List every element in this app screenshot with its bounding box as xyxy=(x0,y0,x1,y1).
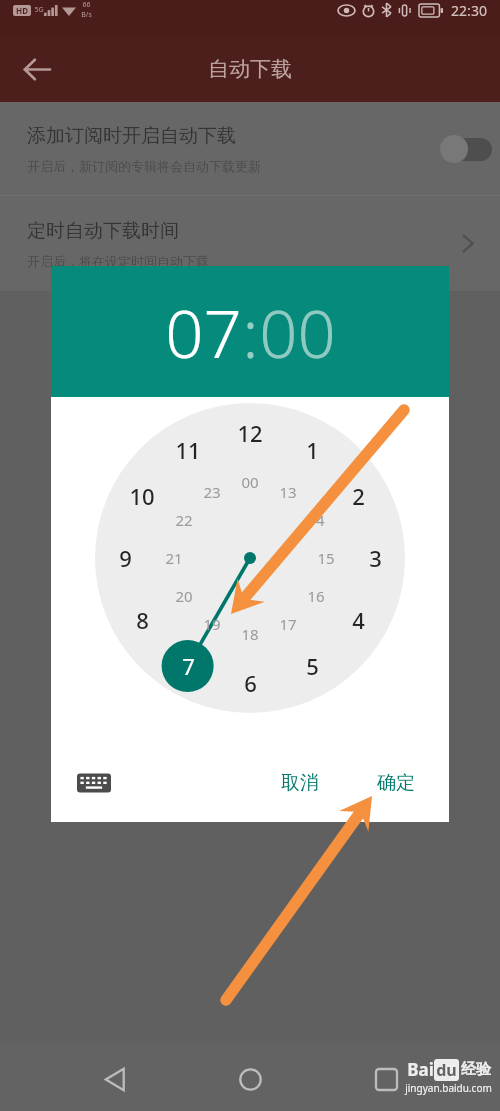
button[interactable]: 9 xyxy=(114,538,137,578)
button[interactable]: 定时自动下载时间 xyxy=(0,196,500,291)
staticText: 11 xyxy=(175,435,201,465)
staticText: 8 xyxy=(136,605,149,635)
button[interactable]: 14 xyxy=(302,505,330,535)
staticText: 5 xyxy=(306,651,319,681)
staticText: 15 xyxy=(317,548,335,568)
button[interactable]: 确定 xyxy=(363,761,429,805)
staticText: 定时自动下载时间 xyxy=(27,219,179,243)
staticText: 13 xyxy=(279,482,297,502)
button[interactable]: 10 xyxy=(124,476,160,516)
staticText: 4 xyxy=(352,605,365,635)
staticText: 20 xyxy=(175,586,193,606)
staticText: 开启后，新订阅的专辑将会自动下载更新 xyxy=(27,158,261,174)
button[interactable]: 18 xyxy=(236,619,264,649)
staticText: 10 xyxy=(129,481,155,511)
button[interactable]: Back xyxy=(12,45,60,93)
staticText: 添加订阅时开启自动下载 xyxy=(27,124,236,148)
button[interactable]: 07 xyxy=(165,286,242,377)
staticText: 14 xyxy=(307,510,325,530)
button[interactable]: 5 xyxy=(301,646,324,686)
staticText: 07 xyxy=(165,286,242,377)
staticText: 5G xyxy=(34,5,44,15)
staticText: : xyxy=(242,286,259,377)
button[interactable]: 23 xyxy=(198,477,226,507)
staticText: HD xyxy=(16,5,28,16)
button[interactable]: 12 xyxy=(232,413,268,453)
staticText: 经验 xyxy=(461,1060,491,1079)
button[interactable]: Switch to keyboard input xyxy=(71,760,117,806)
staticText: 66 xyxy=(82,0,91,10)
staticText: Bai xyxy=(407,1058,434,1081)
button[interactable]: 3 xyxy=(364,538,387,578)
button[interactable]: 21 xyxy=(160,543,188,573)
staticText: 6 xyxy=(244,668,257,698)
staticText: 00 xyxy=(259,286,336,377)
staticText: 7 xyxy=(182,651,195,681)
button[interactable]: 4 xyxy=(347,600,370,640)
button[interactable]: Home xyxy=(228,1057,272,1101)
button[interactable]: 20 xyxy=(170,581,198,611)
button[interactable]: 7 xyxy=(177,646,200,686)
staticText: 3 xyxy=(369,543,382,573)
staticText: jingyan.baidu.com xyxy=(405,1081,492,1095)
button[interactable]: 2 xyxy=(347,476,370,516)
staticText: 22:30 xyxy=(451,1,487,20)
button[interactable]: Recent apps xyxy=(364,1057,408,1101)
button[interactable]: 22 xyxy=(170,505,198,535)
staticText: 22 xyxy=(175,510,193,530)
staticText: 17 xyxy=(279,614,297,634)
button[interactable]: 取消 xyxy=(267,761,333,805)
button[interactable]: 17 xyxy=(274,609,302,639)
staticText: 16 xyxy=(307,586,325,606)
staticText: 19 xyxy=(203,614,221,634)
staticText: du xyxy=(436,1059,457,1081)
button[interactable]: 添加订阅时开启自动下载 xyxy=(0,102,500,195)
staticText: B/s xyxy=(81,10,92,20)
button[interactable]: 1 xyxy=(301,430,324,470)
staticText: 9 xyxy=(119,543,132,573)
button[interactable]: 00 xyxy=(236,467,264,497)
button[interactable]: 6 xyxy=(239,663,262,703)
staticText: 1 xyxy=(306,435,319,465)
staticText: 自动下载 xyxy=(208,56,292,82)
staticText: 12 xyxy=(237,418,263,448)
button[interactable]: 16 xyxy=(302,581,330,611)
staticText: 18 xyxy=(241,624,259,644)
button[interactable]: 15 xyxy=(312,543,340,573)
staticText: 确定 xyxy=(377,771,415,795)
staticText: 2 xyxy=(352,481,365,511)
button[interactable]: 19 xyxy=(198,609,226,639)
staticText: 取消 xyxy=(281,771,319,795)
staticText: 21 xyxy=(165,548,183,568)
staticText: 00 xyxy=(241,472,259,492)
staticText: 23 xyxy=(203,482,221,502)
button[interactable]: 11 xyxy=(170,430,206,470)
button[interactable]: 00 xyxy=(259,286,336,377)
button[interactable]: Back xyxy=(92,1057,136,1101)
button[interactable]: 13 xyxy=(274,477,302,507)
staticText: 开启后，将在设定时间自动下载 xyxy=(27,253,209,269)
button[interactable]: 8 xyxy=(131,600,154,640)
